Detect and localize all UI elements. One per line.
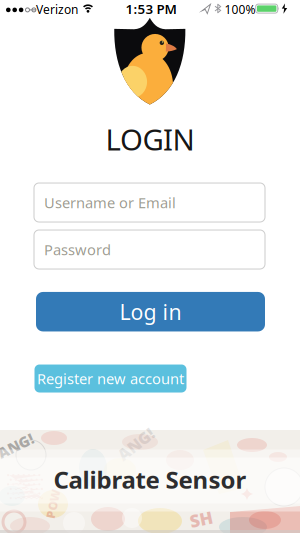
staticText: 1:53 PM (125, 0, 176, 18)
staticText: Register new account (37, 369, 184, 388)
button[interactable]: Log in (36, 292, 265, 331)
staticText: Calibrate Sensor (53, 464, 246, 495)
staticText: 100% (224, 1, 255, 17)
staticText: BANG! (0, 438, 35, 458)
staticText: ANG! (115, 433, 157, 455)
staticText: LOGIN (105, 119, 194, 158)
staticText: SH (189, 507, 212, 530)
secureTextField[interactable]: Password (44, 240, 259, 259)
staticText: Verizon (36, 1, 78, 17)
staticText: Username or Email (44, 193, 176, 212)
staticText: POW (38, 496, 67, 512)
button[interactable]: Register new account (34, 364, 186, 392)
button[interactable]: BANG! (0, 430, 300, 533)
staticText: Password (44, 240, 111, 259)
staticText: Log in (119, 297, 181, 326)
textField[interactable]: Username or Email (44, 193, 259, 212)
